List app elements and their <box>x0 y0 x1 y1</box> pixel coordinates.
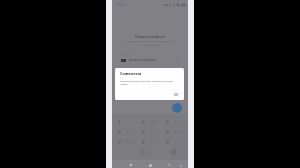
button[interactable]: Home <box>147 162 153 168</box>
staticText: Слишком много попыток. Повторите позже с… <box>120 79 173 85</box>
button[interactable]: 5 <box>136 127 160 137</box>
staticText: 6 <box>166 129 169 136</box>
staticText: Номер телефона <box>112 34 188 39</box>
button[interactable]: 6 <box>160 127 184 137</box>
staticText: 1 <box>118 119 121 126</box>
button[interactable]: 8 <box>136 137 160 147</box>
staticText: 5 <box>142 129 145 136</box>
button[interactable]: OK <box>174 93 184 100</box>
staticText: 3 <box>166 119 169 126</box>
staticText: 15:44 <box>115 3 123 7</box>
staticText: 2 <box>142 119 145 126</box>
staticText: 8 <box>142 139 145 146</box>
staticText: Подтвердите код страны и введите свой но… <box>112 39 188 47</box>
staticText: Russian Federation <box>129 58 156 62</box>
staticText: OK <box>174 93 179 97</box>
button[interactable]: 3 <box>160 117 184 127</box>
staticText: Сожалеем <box>120 71 142 76</box>
button[interactable]: 2 <box>136 117 160 127</box>
button[interactable]: 9 <box>160 137 184 147</box>
staticText: 7 <box>118 139 121 146</box>
staticText: 9 <box>166 139 169 146</box>
staticText: 0 <box>142 149 145 156</box>
button[interactable]: Back <box>166 162 172 168</box>
button[interactable]: Страна <box>112 53 188 62</box>
staticText: 4 <box>118 129 121 136</box>
button[interactable]: Continue <box>172 103 182 113</box>
button[interactable]: 4 <box>112 127 136 137</box>
button[interactable]: Recents <box>128 162 134 168</box>
button[interactable]: 0 <box>136 147 160 157</box>
button[interactable]: Backspace <box>160 147 184 157</box>
